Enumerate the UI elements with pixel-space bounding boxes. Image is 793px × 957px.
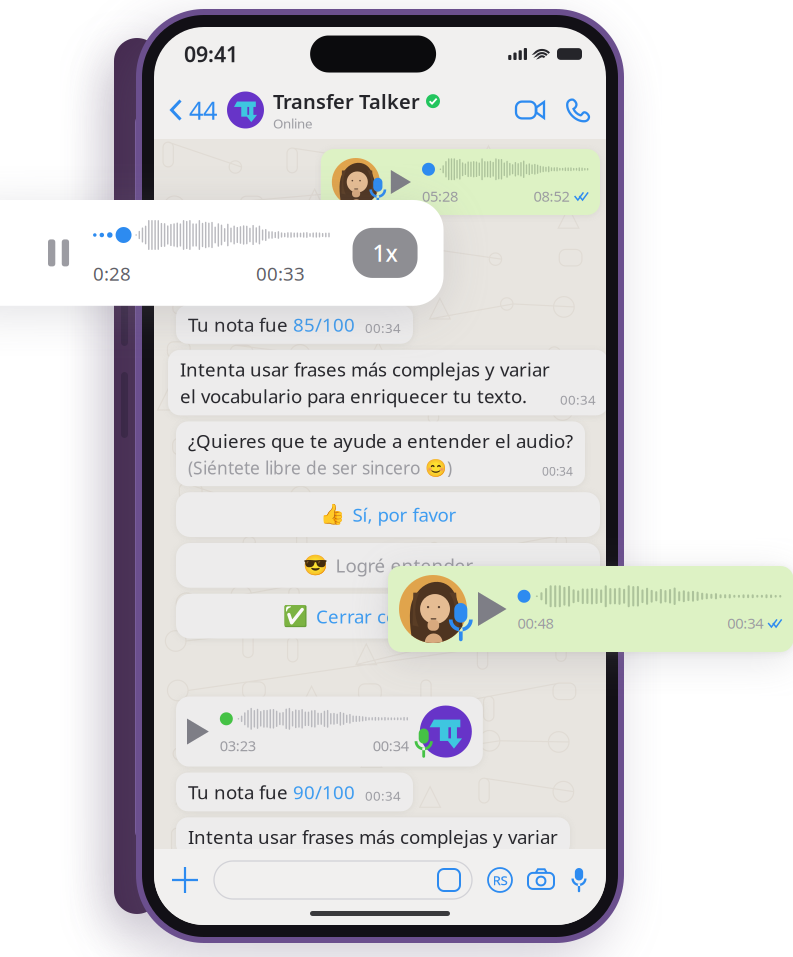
staticText: RS	[492, 871, 507, 889]
staticText: 1x	[373, 238, 398, 268]
staticText: 00:34	[373, 736, 409, 755]
button[interactable]: 😎	[176, 543, 600, 588]
staticText: 00:34	[365, 787, 401, 804]
staticText: 00:34	[365, 319, 401, 337]
button[interactable]: Camera	[528, 869, 554, 891]
staticText: 00:34	[560, 391, 596, 408]
button[interactable]: Pause	[48, 239, 69, 266]
button[interactable]: Voice call	[545, 97, 590, 122]
staticText: 03:23	[220, 736, 256, 755]
staticText: ¿Quieres que te ayude a entender el audi…	[188, 428, 573, 453]
button[interactable]: 1x	[353, 228, 418, 278]
button[interactable]: Record	[570, 867, 588, 892]
staticText: 00:34	[727, 613, 763, 633]
staticText: Cerrar conversación	[316, 604, 493, 629]
staticText: (Siéntete libre de ser sincero 😊)	[188, 456, 452, 479]
staticText: 90/100	[293, 779, 355, 804]
staticText: ✅	[283, 605, 308, 628]
button[interactable]: Video call	[515, 99, 545, 120]
staticText: Sí, por favor	[352, 502, 456, 527]
staticText: Intenta usar frases más complejas y vari…	[188, 824, 558, 849]
staticText: Logré entender	[335, 553, 473, 578]
staticText: Tu nota fue	[188, 779, 293, 804]
staticText: 0:28	[93, 261, 131, 286]
button[interactable]: ✅	[176, 594, 600, 639]
staticText: Intenta usar frases más complejas y vari…	[180, 357, 550, 382]
staticText: 08:52	[534, 186, 570, 206]
button[interactable]: Attach	[172, 867, 198, 893]
button[interactable]: Message	[214, 861, 472, 899]
staticText: 05:28	[422, 186, 458, 206]
button[interactable]: Play voice message	[391, 170, 411, 194]
staticText: el vocabulario para enriquecer tu texto.	[180, 384, 527, 408]
staticText: 00:33	[256, 261, 305, 286]
staticText: Tu nota fue	[188, 312, 293, 337]
staticText: 00:34	[542, 463, 573, 479]
button[interactable]: 👍	[176, 492, 600, 537]
staticText: Online	[273, 114, 313, 132]
staticText: 85/100	[293, 312, 355, 337]
staticText: 👍	[319, 503, 344, 526]
button[interactable]: Transfer Talker	[227, 88, 440, 132]
button[interactable]: Voice style	[488, 868, 512, 892]
staticText: 00:48	[518, 613, 554, 633]
staticText: Transfer Talker	[273, 88, 420, 114]
staticText: 44	[189, 93, 217, 127]
staticText: 😎	[302, 554, 327, 577]
staticText: 09:41	[184, 40, 238, 68]
button[interactable]: Play voice message	[478, 592, 507, 626]
button[interactable]: Play voice message	[187, 718, 209, 744]
button[interactable]: 44	[170, 93, 227, 127]
